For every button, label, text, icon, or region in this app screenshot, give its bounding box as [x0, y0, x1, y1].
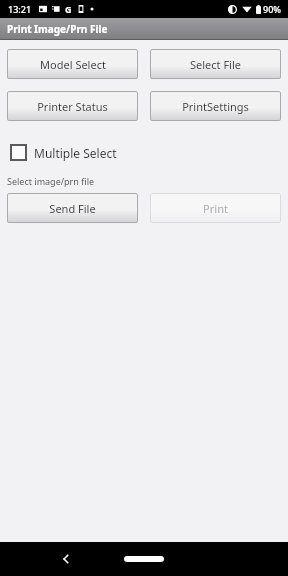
- staticText: Select image/prn file: [7, 175, 95, 187]
- button[interactable]: Printer Status: [7, 91, 138, 121]
- staticText: Multiple Select: [34, 145, 117, 161]
- button[interactable]: Select File: [150, 49, 281, 79]
- button[interactable]: Back: [52, 545, 80, 573]
- button[interactable]: Multiple Select: [7, 142, 120, 163]
- button[interactable]: Print: [150, 193, 281, 223]
- button[interactable]: Model Select: [7, 49, 138, 79]
- staticText: G: [65, 3, 72, 15]
- staticText: Printer Status: [37, 99, 108, 114]
- staticText: PrintSettings: [182, 99, 249, 114]
- staticText: Print Image/Prn File: [7, 22, 108, 36]
- staticText: 90%: [263, 3, 281, 15]
- staticText: Select File: [190, 57, 241, 72]
- staticText: Print: [203, 201, 228, 216]
- staticText: 13:21: [8, 3, 32, 15]
- button[interactable]: Send File: [7, 193, 138, 223]
- staticText: Send File: [49, 201, 96, 216]
- button[interactable]: Home: [121, 552, 167, 566]
- staticText: Model Select: [40, 57, 106, 72]
- button[interactable]: PrintSettings: [150, 91, 281, 121]
